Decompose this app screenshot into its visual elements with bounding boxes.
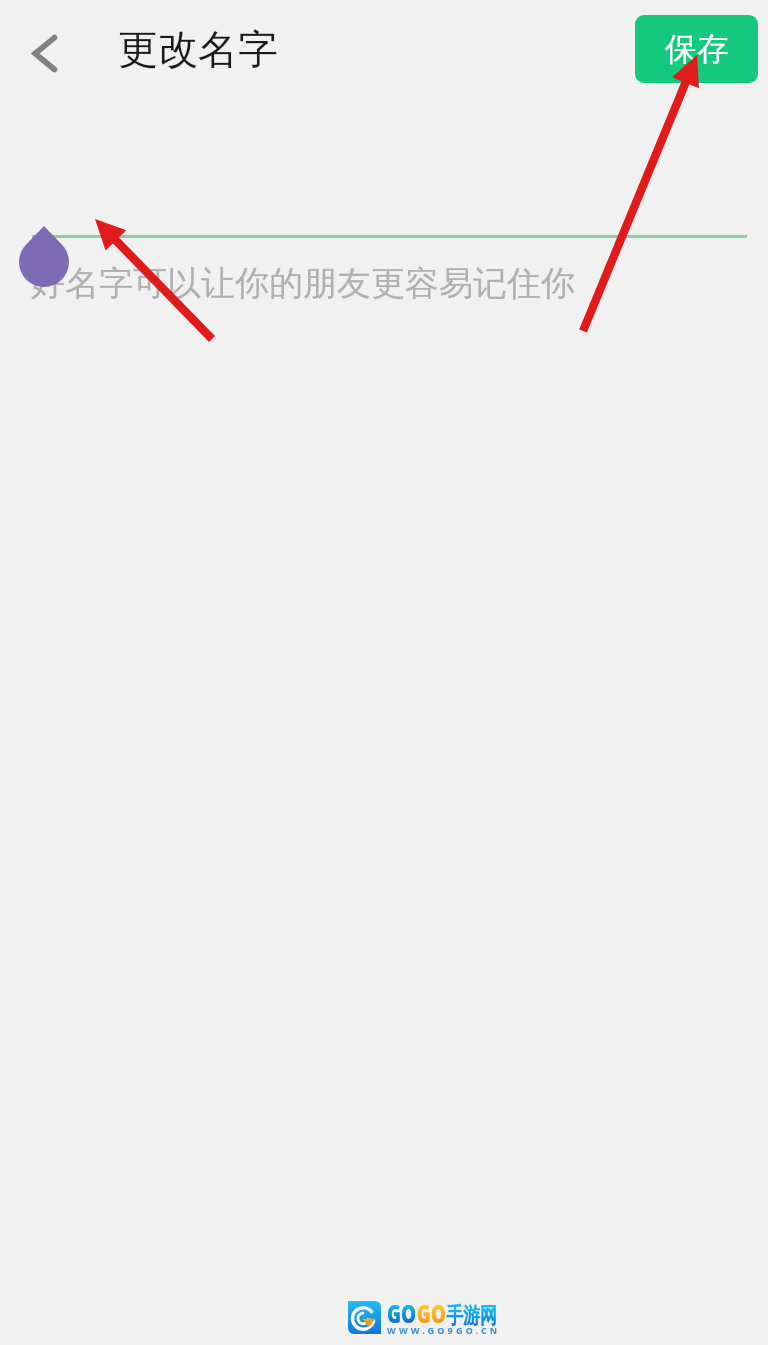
staticText: GO xyxy=(417,1296,446,1330)
button[interactable]: Back xyxy=(15,23,71,79)
staticText: GO xyxy=(387,1296,417,1330)
button[interactable]: 好名字可以让你的朋友更容易记住你 xyxy=(32,180,747,310)
staticText: WWW.GO9GO.CN xyxy=(387,1324,501,1336)
other: Text cursor handle xyxy=(19,226,69,287)
staticText: 保存 xyxy=(665,29,729,69)
staticText: 手游网 xyxy=(446,1302,496,1330)
staticText: 好名字可以让你的朋友更容易记住你 xyxy=(31,262,575,305)
staticText: 更改名字 xyxy=(118,24,278,74)
button[interactable]: 保存 xyxy=(635,15,758,83)
